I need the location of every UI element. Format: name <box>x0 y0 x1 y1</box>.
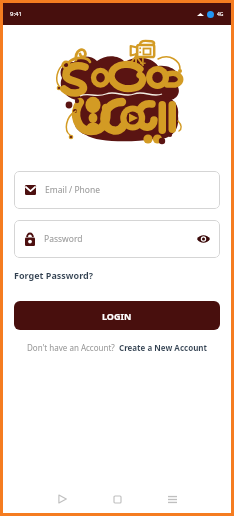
button[interactable]: LOGIN <box>14 301 220 330</box>
button[interactable]: Back <box>49 486 75 512</box>
button[interactable]: Create a New Account <box>119 342 208 353</box>
staticText: 4G <box>217 11 224 18</box>
staticText: Email / Phone <box>45 184 100 196</box>
staticText: Password <box>44 233 83 245</box>
button[interactable]: Recent apps <box>159 486 185 512</box>
staticText: Forget Password? <box>14 269 93 281</box>
staticText: 9:41 <box>10 10 22 18</box>
staticText: LOGIN <box>102 310 132 322</box>
button[interactable]: Show password <box>196 232 211 246</box>
staticText: Create a New Account <box>119 342 208 353</box>
button[interactable]: Home <box>104 486 130 512</box>
button[interactable]: Email / Phone <box>25 171 211 209</box>
button[interactable]: Password <box>25 220 211 258</box>
staticText: Don't have an Account? <box>27 342 119 353</box>
button[interactable]: Forget Password? <box>14 269 93 281</box>
